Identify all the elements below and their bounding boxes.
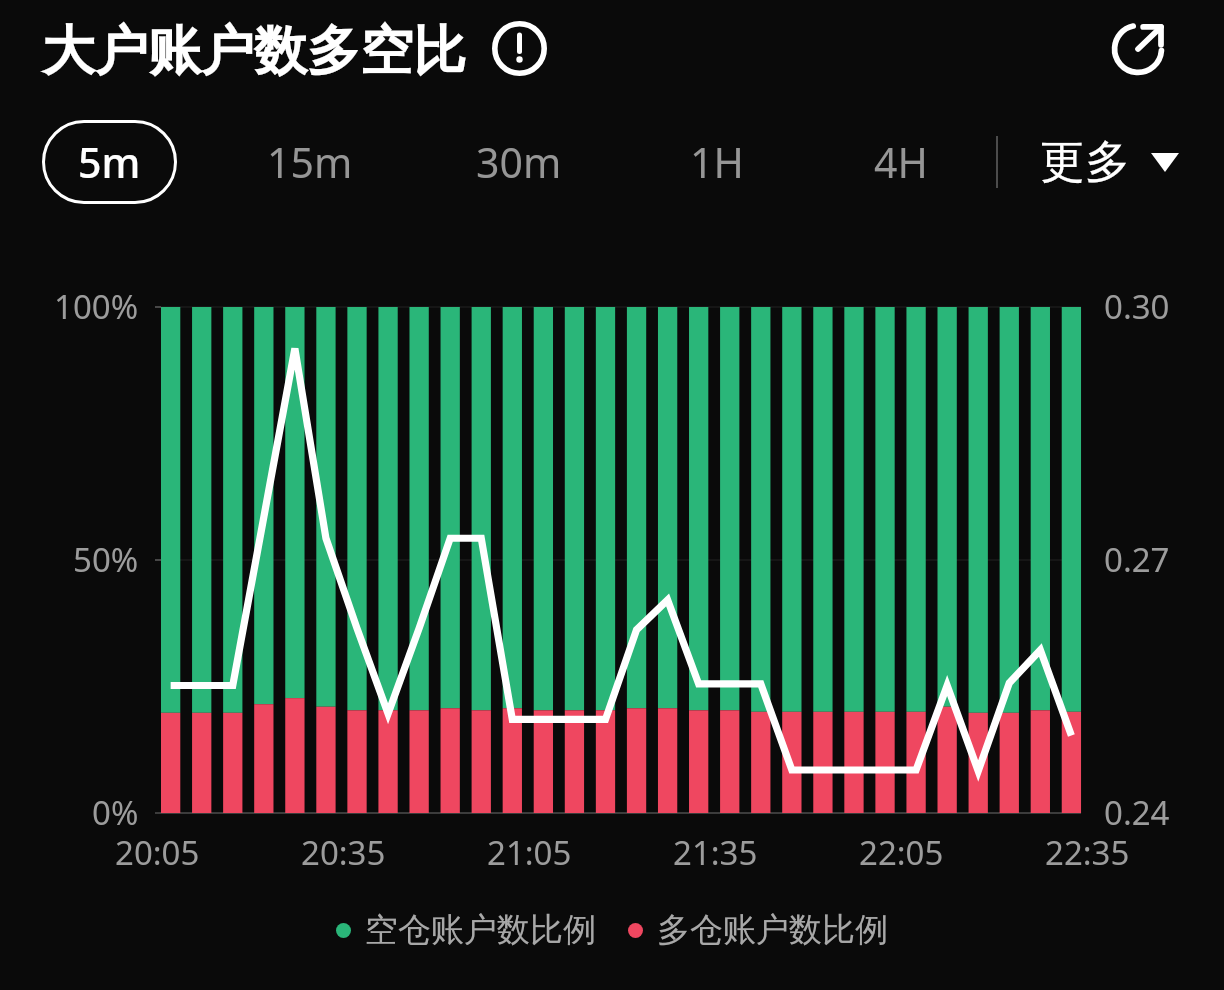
button[interactable]: 5m <box>42 120 177 204</box>
button[interactable]: 15m <box>240 120 380 204</box>
staticText: 22:35 <box>1045 830 1130 875</box>
staticText: 30m <box>476 134 562 190</box>
staticText: 0.27 <box>1104 537 1170 582</box>
staticText: 22:05 <box>859 830 944 875</box>
button[interactable]: 多仓账户数比例 <box>628 900 888 960</box>
staticText: 多仓账户数比例 <box>657 909 888 951</box>
staticText: 大户账户数多空比 <box>42 18 466 85</box>
staticText: 1H <box>690 134 744 190</box>
staticText: 20:05 <box>115 830 200 875</box>
staticText: 更多 <box>1040 134 1130 191</box>
staticText: 0% <box>92 790 139 835</box>
button[interactable]: Information <box>488 17 551 80</box>
staticText: 20:35 <box>301 830 386 875</box>
button[interactable]: 大户账户数多空比 <box>42 11 466 91</box>
button[interactable]: Share <box>1101 10 1179 88</box>
staticText: 15m <box>267 134 353 190</box>
button[interactable]: 1H <box>647 120 787 204</box>
button[interactable]: 更多 <box>1040 122 1179 202</box>
staticText: 4H <box>874 134 928 190</box>
staticText: 21:35 <box>673 830 758 875</box>
staticText: 0.30 <box>1104 284 1170 329</box>
staticText: 21:05 <box>487 830 572 875</box>
staticText: 空仓账户数比例 <box>365 909 596 951</box>
staticText: 0.24 <box>1104 790 1170 835</box>
button[interactable]: 空仓账户数比例 <box>336 900 596 960</box>
button[interactable]: 4H <box>831 120 971 204</box>
button[interactable]: 30m <box>449 120 589 204</box>
staticText: 100% <box>54 284 139 329</box>
staticText: 50% <box>73 537 139 582</box>
staticText: 5m <box>78 134 141 190</box>
